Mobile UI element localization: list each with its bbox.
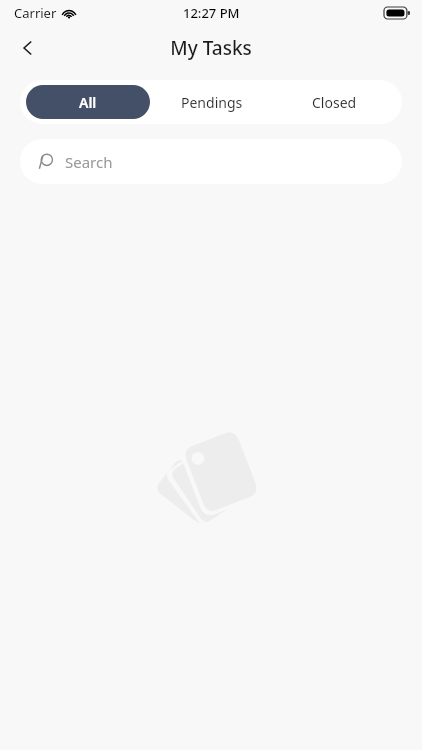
staticText: My Tasks [170, 35, 252, 61]
staticText: All [79, 93, 97, 112]
staticText: Closed [312, 93, 357, 112]
staticText: Pendings [181, 93, 243, 112]
staticText: Carrier [14, 4, 57, 22]
button[interactable]: Pendings [150, 85, 273, 119]
staticText: 12:27 PM [183, 4, 240, 22]
staticText: Search [65, 152, 113, 172]
button[interactable]: Search [20, 139, 402, 184]
button[interactable]: Back [6, 26, 50, 70]
button[interactable]: All [26, 85, 150, 119]
button[interactable]: Closed [273, 85, 396, 119]
